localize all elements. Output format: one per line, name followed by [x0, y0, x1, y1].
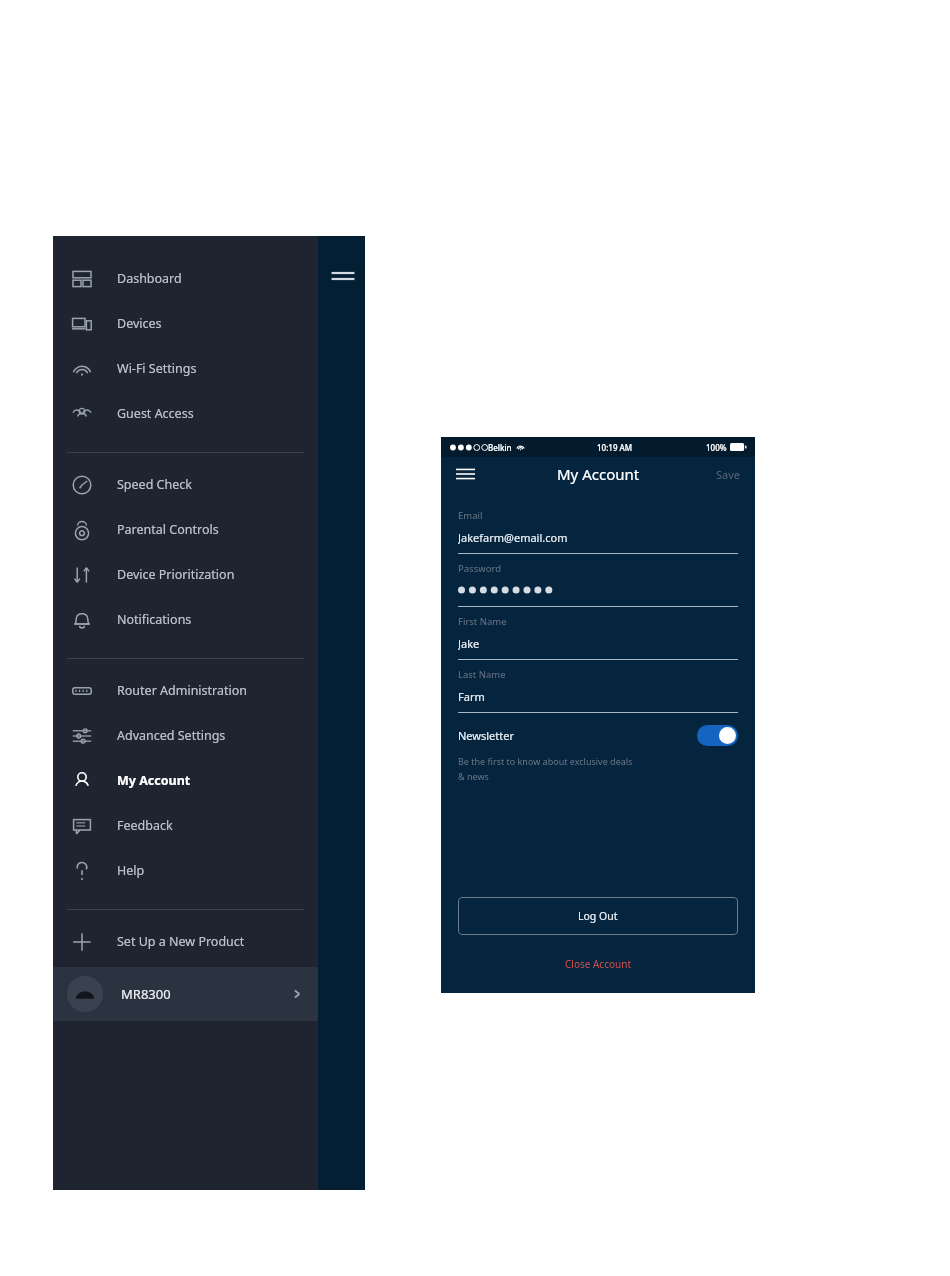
staticText: Farm — [458, 689, 485, 703]
button[interactable]: Newsletter toggle, on — [697, 725, 738, 746]
staticText: 100% — [706, 442, 727, 453]
staticText: Feedback — [117, 817, 173, 834]
staticText: Be the first to know about exclusive dea… — [458, 755, 633, 767]
staticText: Save — [716, 467, 741, 482]
button[interactable]: Notifications — [53, 597, 365, 642]
button[interactable]: Dashboard — [53, 256, 365, 301]
button[interactable]: Open menu — [453, 462, 477, 486]
staticText: Router Administration — [117, 682, 248, 699]
staticText: Wi-Fi Settings — [117, 360, 197, 377]
button[interactable]: Close Account — [441, 953, 755, 975]
button[interactable]: Router Administration — [53, 668, 365, 713]
button[interactable]: My Account — [53, 758, 365, 803]
staticText: My Account — [117, 772, 191, 789]
staticText: My Account — [557, 464, 640, 484]
staticText: Speed Check — [117, 476, 192, 493]
staticText: Notifications — [117, 611, 192, 628]
staticText: Devices — [117, 315, 162, 332]
button[interactable]: Parental Controls — [53, 507, 365, 552]
staticText: Last Name — [458, 668, 506, 681]
staticText: Jake — [458, 636, 480, 650]
staticText: Dashboard — [117, 270, 182, 287]
staticText: Set Up a New Product — [117, 933, 245, 950]
staticText: MR8300 — [121, 985, 171, 1003]
staticText: & news — [458, 770, 489, 782]
staticText: Guest Access — [117, 405, 194, 422]
button[interactable]: Log Out — [458, 897, 738, 935]
button[interactable]: Guest Access — [53, 391, 365, 436]
button[interactable]: Advanced Settings — [53, 713, 365, 758]
button[interactable]: Save — [712, 463, 745, 486]
staticText: Jakefarm@email.com — [458, 530, 568, 544]
button[interactable]: Speed Check — [53, 462, 365, 507]
staticText: Device Prioritization — [117, 566, 235, 583]
staticText: Log Out — [578, 909, 618, 923]
button[interactable]: Set Up a New Product — [53, 919, 365, 964]
button[interactable]: Close menu — [329, 264, 357, 292]
staticText: Email — [458, 509, 483, 522]
button[interactable]: MR8300 — [53, 967, 318, 1021]
button[interactable]: Help — [53, 848, 365, 893]
staticText: Help — [117, 862, 145, 879]
staticText: Belkin — [488, 442, 512, 453]
button[interactable]: Feedback — [53, 803, 365, 848]
staticText: 10:19 AM — [597, 442, 633, 453]
staticText: Parental Controls — [117, 521, 219, 538]
button[interactable]: Devices — [53, 301, 365, 346]
staticText: Password — [458, 562, 501, 575]
button[interactable]: Device Prioritization — [53, 552, 365, 597]
staticText: Advanced Settings — [117, 727, 226, 744]
button[interactable]: Wi-Fi Settings — [53, 346, 365, 391]
staticText: Newsletter — [458, 728, 514, 743]
staticText: Close Account — [565, 957, 631, 971]
staticText: First Name — [458, 615, 507, 628]
